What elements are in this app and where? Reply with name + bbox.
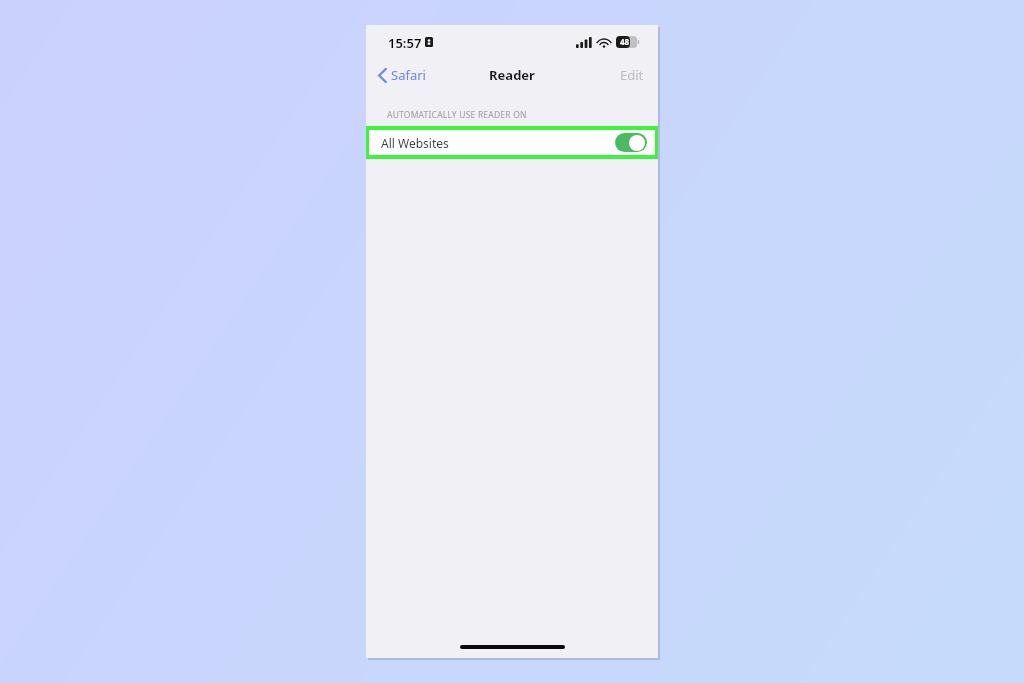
button[interactable]: Safari	[374, 62, 430, 88]
staticText: 48	[620, 36, 630, 47]
staticText: Edit	[620, 66, 644, 84]
staticText: All Websites	[381, 135, 449, 151]
staticText: 15:57	[388, 34, 422, 52]
staticText: Reader	[489, 66, 535, 84]
button[interactable]: Automatically use Reader on all websites	[615, 133, 647, 152]
button[interactable]: All Websites	[369, 130, 655, 155]
staticText: Safari	[391, 66, 426, 84]
button[interactable]: Edit	[616, 62, 648, 88]
staticText: AUTOMATICALLY USE READER ON	[387, 109, 527, 121]
